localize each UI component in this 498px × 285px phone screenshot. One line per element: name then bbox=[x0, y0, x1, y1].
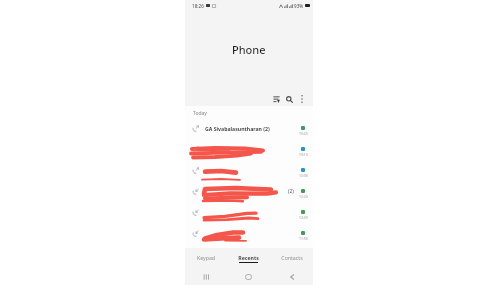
button[interactable]: Back bbox=[270, 268, 313, 285]
button[interactable]: Search bbox=[283, 91, 296, 107]
staticText: 93% bbox=[294, 3, 304, 9]
staticText: 12:39 bbox=[299, 194, 308, 199]
button[interactable]: 19:13 bbox=[185, 139, 313, 160]
button[interactable]: Sort and filter bbox=[269, 91, 283, 107]
button[interactable]: Keypad bbox=[185, 248, 227, 261]
button[interactable]: 11:58 bbox=[185, 223, 313, 244]
staticText: Recents bbox=[238, 254, 259, 261]
button[interactable]: 12:09 bbox=[185, 202, 313, 223]
button[interactable]: Home bbox=[227, 268, 270, 285]
staticText: 18:26 bbox=[192, 3, 204, 9]
staticText: 19:13 bbox=[299, 152, 308, 157]
staticText: GA Sivabalasuntharan (2) bbox=[205, 125, 297, 132]
button[interactable]: GA Sivabalasuntharan (2) bbox=[185, 118, 313, 139]
button[interactable]: (2) bbox=[185, 181, 313, 202]
staticText: Contacts bbox=[281, 254, 303, 261]
button[interactable]: 13:06 bbox=[185, 160, 313, 181]
staticText: Today bbox=[193, 110, 207, 117]
staticText: 19:25 bbox=[299, 131, 308, 136]
staticText: 13:06 bbox=[299, 173, 308, 178]
button[interactable]: Recent apps bbox=[185, 268, 227, 285]
staticText: 11:58 bbox=[299, 236, 308, 241]
button[interactable]: More options bbox=[296, 91, 307, 107]
staticText: Keypad bbox=[197, 254, 215, 261]
button[interactable]: Recents bbox=[227, 248, 270, 263]
staticText: Phone bbox=[232, 42, 266, 57]
staticText: (2) bbox=[288, 188, 294, 195]
button[interactable]: Contacts bbox=[270, 248, 313, 261]
staticText: 12:09 bbox=[299, 215, 308, 220]
